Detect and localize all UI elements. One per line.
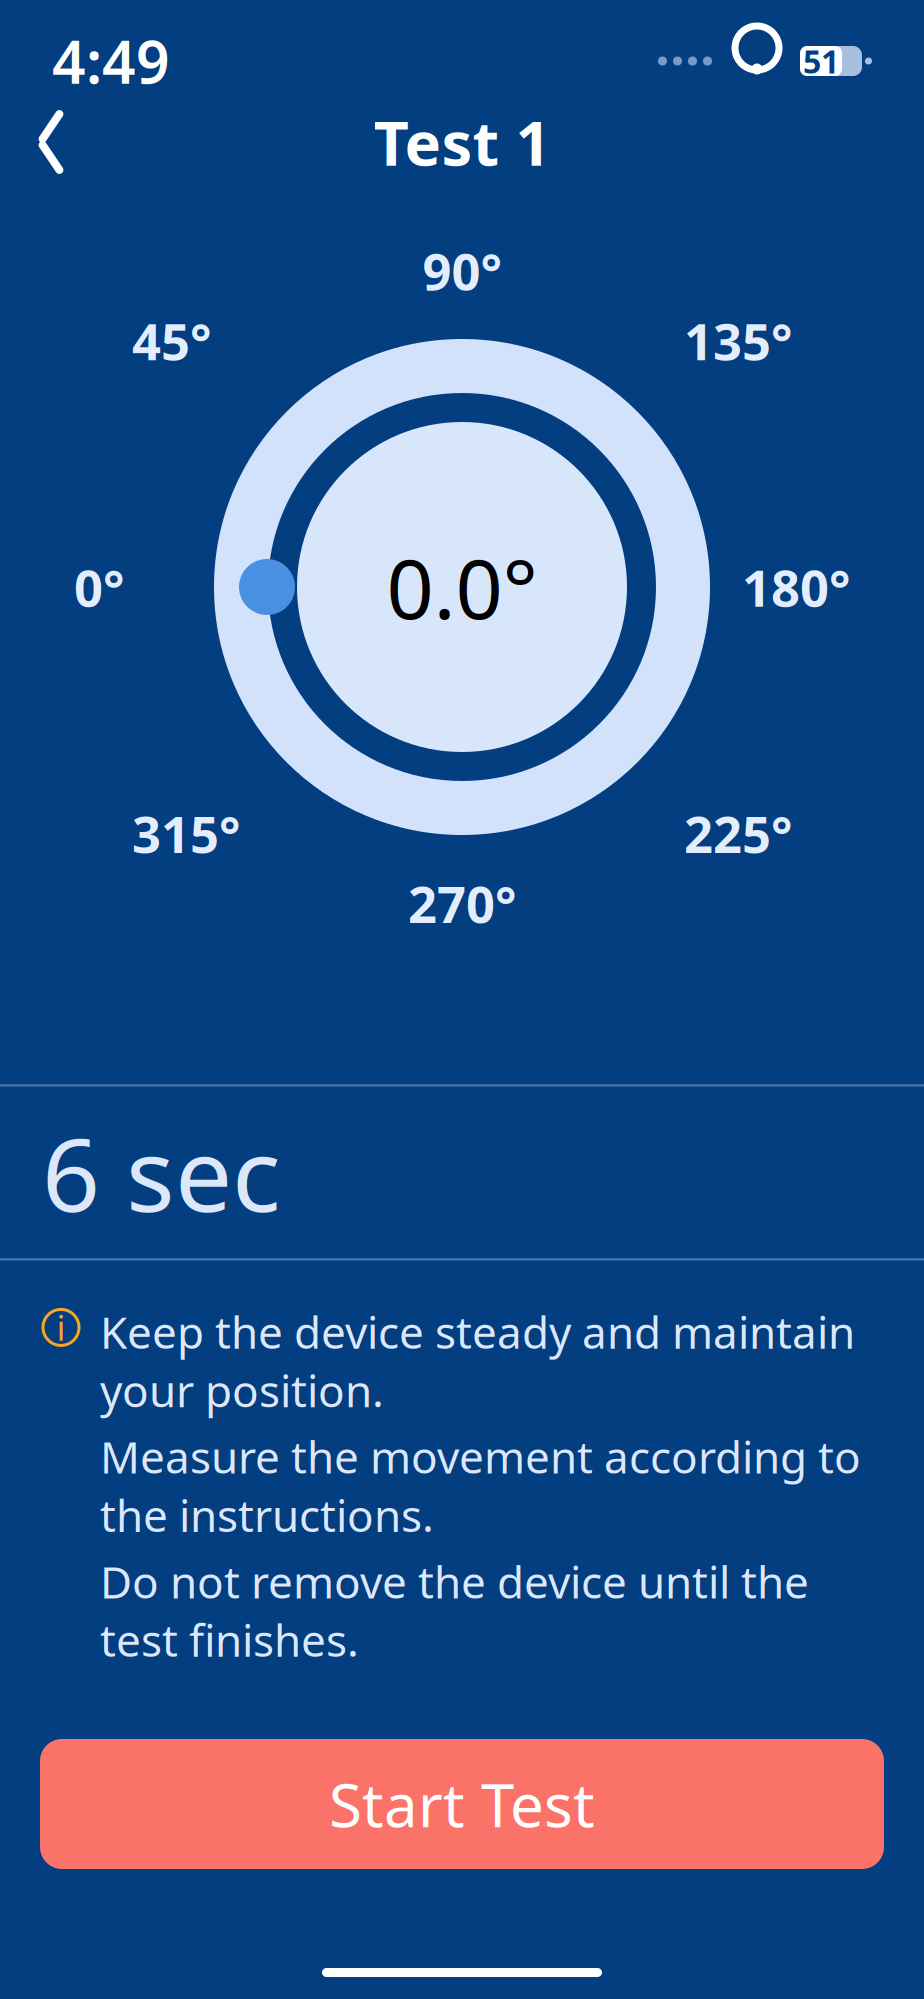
staticText: 51 bbox=[803, 40, 839, 82]
staticText: 6 sec bbox=[42, 1105, 281, 1240]
button[interactable]: Back bbox=[8, 99, 94, 185]
staticText: 270° bbox=[408, 870, 516, 937]
button[interactable]: Start Test bbox=[40, 1739, 884, 1869]
staticText: Start Test bbox=[329, 1764, 595, 1844]
staticText: 45° bbox=[132, 307, 211, 374]
staticText: 225° bbox=[684, 800, 792, 867]
staticText: 90° bbox=[422, 237, 501, 304]
staticText: Keep the device steady and maintain your… bbox=[100, 1302, 855, 1419]
staticText: 315° bbox=[132, 800, 240, 867]
staticText: Test 1 bbox=[373, 101, 550, 183]
staticText: Do not remove the device until the test … bbox=[100, 1552, 809, 1669]
staticText: 135° bbox=[684, 307, 792, 374]
staticText: 4:49 bbox=[52, 22, 170, 100]
staticText: 0° bbox=[74, 553, 124, 621]
staticText: i bbox=[56, 1304, 65, 1350]
staticText: Measure the movement according to the in… bbox=[100, 1427, 861, 1544]
staticText: 0.0° bbox=[386, 532, 537, 642]
staticText: 180° bbox=[742, 553, 850, 621]
